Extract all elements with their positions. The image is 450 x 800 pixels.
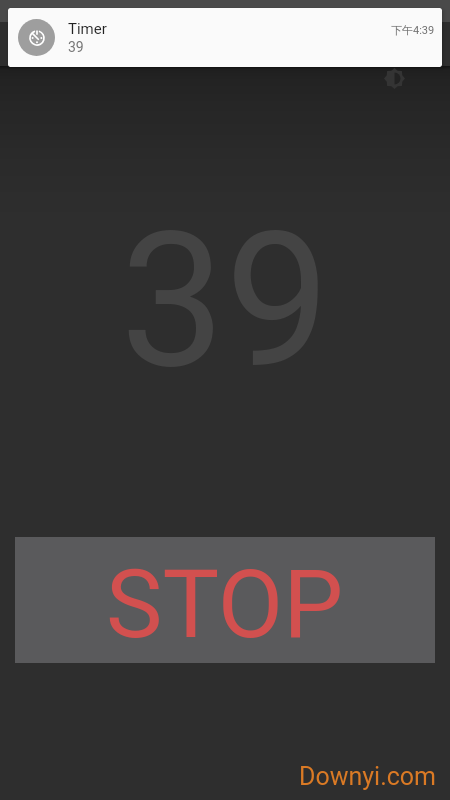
staticText: STOP xyxy=(106,549,344,660)
button[interactable]: Brightness xyxy=(384,68,405,89)
staticText: Downyi.com xyxy=(299,762,437,791)
staticText: Timer xyxy=(68,20,107,38)
button[interactable]: STOP xyxy=(15,537,435,663)
button[interactable]: Timer xyxy=(8,8,442,67)
staticText: 39 xyxy=(0,192,450,411)
staticText: 下午4:39 xyxy=(391,23,435,37)
staticText: 39 xyxy=(68,39,84,55)
